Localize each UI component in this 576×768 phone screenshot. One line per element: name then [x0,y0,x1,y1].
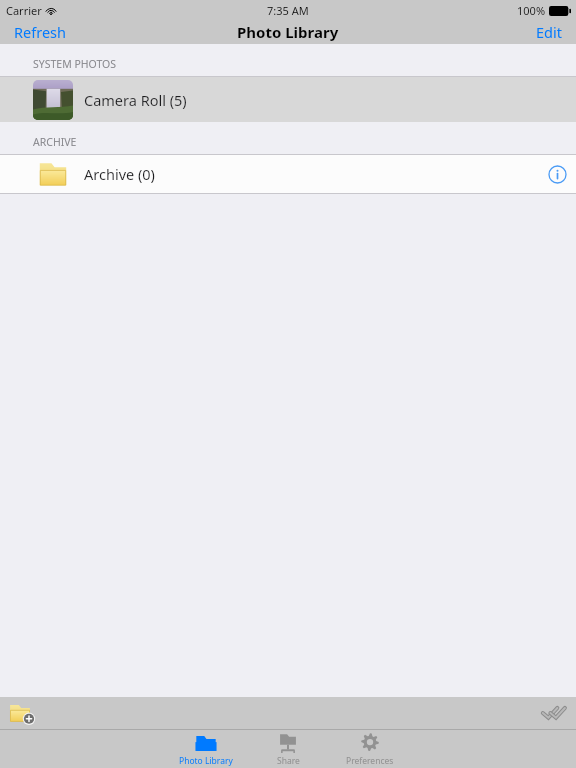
staticText: Camera Roll (5) [84,90,187,110]
staticText: 100% [517,3,546,18]
button[interactable]: Camera Roll (5) [0,77,576,122]
staticText: Edit [536,22,562,42]
staticText: ARCHIVE [33,135,77,149]
staticText: Carrier [6,3,42,18]
staticText: 7:35 AM [267,3,309,18]
staticText: Archive (0) [84,164,155,184]
staticText: Photo Library [237,22,339,42]
staticText: Photo Library [179,755,233,767]
button[interactable]: Edit [522,20,576,44]
staticText: Preferences [346,755,394,767]
staticText: Share [277,755,300,767]
staticText: Refresh [14,22,66,42]
button[interactable]: Preferences [329,730,411,768]
staticText: SYSTEM PHOTOS [33,57,117,71]
button[interactable]: Archive (0) [0,155,576,193]
button[interactable]: Share [247,730,329,768]
button[interactable]: Photo Library [165,730,247,768]
button[interactable]: Select All [532,697,576,729]
button[interactable]: More Info [538,155,576,193]
button[interactable]: Refresh [0,20,80,44]
button[interactable]: New Folder [0,697,40,729]
